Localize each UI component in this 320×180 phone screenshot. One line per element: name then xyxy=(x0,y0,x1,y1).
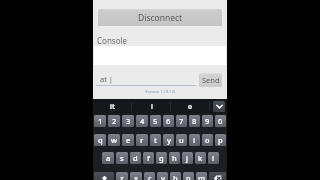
staticText: l xyxy=(212,153,215,163)
staticText: x xyxy=(134,173,139,180)
button[interactable]: q xyxy=(94,134,106,146)
staticText: t xyxy=(154,135,157,145)
staticText: z xyxy=(120,173,124,180)
staticText: Disconnect xyxy=(138,12,183,24)
staticText: o xyxy=(205,135,210,145)
staticText: n xyxy=(186,173,191,180)
staticText: w xyxy=(111,135,118,145)
staticText: v xyxy=(161,173,165,180)
staticText: k xyxy=(198,153,203,163)
button[interactable]: Send xyxy=(199,73,222,87)
button[interactable]: 8 xyxy=(189,115,200,127)
staticText: c xyxy=(148,173,152,180)
button[interactable]: i xyxy=(189,134,200,146)
staticText: 7 xyxy=(179,116,184,126)
staticText: 6 xyxy=(166,116,171,126)
staticText: b xyxy=(173,173,178,180)
staticText: o xyxy=(188,102,193,111)
staticText: i xyxy=(193,135,196,145)
staticText: p xyxy=(218,135,223,145)
staticText: 1 xyxy=(98,116,103,126)
staticText: Version 1.10.1.0 xyxy=(93,89,227,94)
button[interactable]: k xyxy=(195,152,206,164)
button[interactable]: r xyxy=(136,134,148,146)
button[interactable]: Shift xyxy=(94,172,114,180)
staticText: m xyxy=(198,173,206,180)
staticText: at | xyxy=(100,74,113,84)
button[interactable]: d xyxy=(130,152,141,164)
button[interactable]: Disconnect xyxy=(98,9,222,26)
staticText: y xyxy=(167,135,171,145)
button[interactable]: g xyxy=(156,152,167,164)
button[interactable]: 9 xyxy=(202,115,213,127)
button[interactable]: l xyxy=(208,152,219,164)
button[interactable]: p xyxy=(215,134,226,146)
button[interactable]: 1 xyxy=(94,115,106,127)
button[interactable]: o xyxy=(202,134,213,146)
button[interactable]: t xyxy=(150,134,161,146)
staticText: u xyxy=(179,135,184,145)
button[interactable]: e xyxy=(122,134,134,146)
staticText: 8 xyxy=(192,116,197,126)
staticText: r xyxy=(140,135,144,145)
staticText: it xyxy=(110,102,115,111)
button[interactable]: m xyxy=(196,172,207,180)
button[interactable]: Show more suggestions xyxy=(210,99,227,114)
staticText: Send xyxy=(202,75,220,85)
staticText: 5 xyxy=(153,116,158,126)
button[interactable]: 7 xyxy=(176,115,187,127)
button[interactable]: o xyxy=(171,99,210,114)
button[interactable]: v xyxy=(157,172,168,180)
button[interactable]: 6 xyxy=(163,115,174,127)
staticText: i xyxy=(151,102,153,111)
button[interactable]: s xyxy=(116,152,128,164)
staticText: f xyxy=(147,153,150,163)
staticText: Console xyxy=(97,35,128,46)
button[interactable]: 4 xyxy=(136,115,148,127)
button[interactable]: 3 xyxy=(122,115,134,127)
staticText: s xyxy=(120,153,124,163)
button[interactable]: w xyxy=(108,134,120,146)
staticText: d xyxy=(133,153,138,163)
button[interactable]: u xyxy=(176,134,187,146)
staticText: h xyxy=(172,153,177,163)
button[interactable]: j xyxy=(182,152,193,164)
button[interactable]: a xyxy=(102,152,114,164)
staticText: a xyxy=(106,153,111,163)
button[interactable]: it xyxy=(93,99,132,114)
button[interactable]: i xyxy=(132,99,171,114)
button[interactable]: 5 xyxy=(150,115,161,127)
button[interactable]: c xyxy=(144,172,155,180)
button[interactable]: 0 xyxy=(215,115,226,127)
staticText: j xyxy=(186,153,189,163)
button[interactable]: Backspace xyxy=(209,172,226,180)
staticText: 9 xyxy=(205,116,210,126)
staticText: q xyxy=(98,135,103,145)
button[interactable]: f xyxy=(143,152,154,164)
button[interactable]: x xyxy=(130,172,142,180)
button[interactable]: 2 xyxy=(108,115,120,127)
staticText: g xyxy=(159,153,164,163)
staticText: 0 xyxy=(218,116,223,126)
button[interactable]: y xyxy=(163,134,174,146)
button[interactable]: z xyxy=(116,172,128,180)
button[interactable]: b xyxy=(170,172,181,180)
staticText: e xyxy=(126,135,131,145)
staticText: 4 xyxy=(140,116,145,126)
button[interactable]: h xyxy=(169,152,180,164)
staticText: 2 xyxy=(112,116,117,126)
staticText: 3 xyxy=(126,116,131,126)
button[interactable]: n xyxy=(183,172,194,180)
